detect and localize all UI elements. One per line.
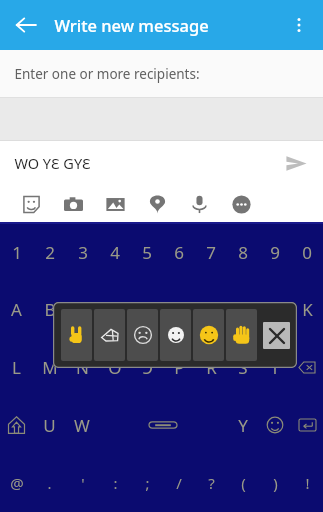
button[interactable]: U bbox=[33, 396, 66, 454]
staticText: ) bbox=[273, 473, 278, 493]
staticText: 3 bbox=[78, 241, 88, 264]
button[interactable]: 6 bbox=[163, 224, 195, 281]
button[interactable]: Sticker bbox=[10, 186, 52, 222]
staticText: ? bbox=[208, 473, 215, 493]
button[interactable]: 7 bbox=[195, 224, 227, 281]
staticText: L bbox=[12, 356, 21, 379]
staticText: Write new message bbox=[54, 14, 209, 36]
button[interactable]: A bbox=[0, 281, 33, 338]
button[interactable]: 4 bbox=[99, 224, 131, 281]
button[interactable]: M bbox=[33, 338, 66, 396]
button[interactable]: Enter bbox=[291, 396, 323, 454]
button[interactable]: Voice bbox=[178, 186, 220, 222]
button[interactable]: Ɔ bbox=[131, 338, 163, 396]
button[interactable]: WO YƐ GYƐ bbox=[0, 141, 323, 185]
button[interactable]: . bbox=[33, 454, 66, 512]
button[interactable]: ' bbox=[66, 454, 99, 512]
staticText: 5 bbox=[142, 241, 152, 264]
staticText: M bbox=[42, 356, 58, 379]
button[interactable]: ) bbox=[259, 454, 291, 512]
button[interactable]: Location bbox=[136, 186, 178, 222]
button[interactable]: 9 bbox=[259, 224, 291, 281]
staticText: Enter one or more recipients: bbox=[14, 65, 200, 83]
staticText: R bbox=[206, 356, 217, 379]
button[interactable]: ; bbox=[131, 454, 163, 512]
button[interactable]: S bbox=[227, 338, 259, 396]
button[interactable]: Emoji bbox=[259, 396, 291, 454]
button[interactable]: ? bbox=[195, 454, 227, 512]
button[interactable]: ! bbox=[291, 454, 323, 512]
button[interactable]: 3 bbox=[66, 224, 99, 281]
staticText: ; bbox=[145, 473, 150, 493]
button[interactable]: Enter one or more recipients: bbox=[0, 50, 323, 97]
button[interactable]: White smiling face bbox=[160, 309, 191, 361]
staticText: D bbox=[76, 298, 89, 321]
staticText: 0 bbox=[302, 241, 312, 264]
staticText: 4 bbox=[110, 241, 120, 264]
staticText: : bbox=[113, 473, 118, 493]
staticText: 9 bbox=[270, 241, 280, 264]
staticText: P bbox=[174, 356, 185, 379]
button[interactable]: L bbox=[0, 338, 33, 396]
button[interactable]: / bbox=[163, 454, 195, 512]
button[interactable]: ( bbox=[227, 454, 259, 512]
button[interactable]: R bbox=[195, 338, 227, 396]
button[interactable]: Camera bbox=[52, 186, 94, 222]
staticText: 7 bbox=[206, 241, 216, 264]
button[interactable]: Slingshot bbox=[94, 309, 125, 361]
button[interactable]: T bbox=[259, 338, 291, 396]
button[interactable]: G bbox=[195, 281, 227, 338]
button[interactable]: Close bbox=[263, 322, 290, 349]
button[interactable]: Backspace bbox=[291, 338, 323, 396]
button[interactable]: D bbox=[66, 281, 99, 338]
button[interactable]: Ɛ bbox=[131, 281, 163, 338]
button[interactable]: Shift bbox=[0, 396, 33, 454]
button[interactable]: Back bbox=[6, 5, 46, 45]
button[interactable]: : bbox=[99, 454, 131, 512]
staticText: B bbox=[44, 298, 56, 321]
button[interactable]: Victory hand bbox=[61, 309, 92, 361]
button[interactable]: F bbox=[163, 281, 195, 338]
button[interactable]: P bbox=[163, 338, 195, 396]
staticText: 6 bbox=[174, 241, 184, 264]
button[interactable]: Smiling face bbox=[193, 309, 224, 361]
button[interactable]: W bbox=[66, 396, 98, 454]
staticText: @ bbox=[10, 473, 24, 493]
button[interactable]: Gallery bbox=[94, 186, 136, 222]
staticText: U bbox=[43, 414, 56, 437]
button[interactable]: More bbox=[220, 186, 262, 222]
staticText: Ɛ bbox=[142, 298, 152, 321]
button[interactable]: K bbox=[291, 281, 323, 338]
button[interactable]: More options bbox=[279, 5, 319, 45]
staticText: Ɔ bbox=[142, 356, 153, 379]
button[interactable]: Space bbox=[98, 396, 227, 454]
button[interactable]: B bbox=[33, 281, 66, 338]
staticText: 2 bbox=[45, 241, 55, 264]
other: Backspace bbox=[299, 362, 315, 373]
staticText: T bbox=[270, 356, 280, 379]
button[interactable]: @ bbox=[0, 454, 33, 512]
button[interactable]: 8 bbox=[227, 224, 259, 281]
button[interactable]: Raised hand bbox=[226, 309, 257, 361]
staticText: E bbox=[110, 298, 120, 321]
button[interactable]: 1 bbox=[0, 224, 33, 281]
button[interactable]: 2 bbox=[33, 224, 66, 281]
staticText: 1 bbox=[12, 241, 22, 264]
button[interactable]: O bbox=[99, 338, 131, 396]
staticText: F bbox=[175, 298, 184, 321]
staticText: I bbox=[272, 298, 278, 321]
button[interactable]: Send bbox=[279, 146, 313, 180]
staticText: A bbox=[11, 298, 22, 321]
button[interactable]: 5 bbox=[131, 224, 163, 281]
button[interactable]: I bbox=[259, 281, 291, 338]
button[interactable]: E bbox=[99, 281, 131, 338]
button[interactable]: N bbox=[66, 338, 99, 396]
staticText: / bbox=[176, 473, 182, 493]
button[interactable]: Y bbox=[227, 396, 259, 454]
button[interactable]: H bbox=[227, 281, 259, 338]
staticText: 8 bbox=[238, 241, 248, 264]
staticText: . bbox=[47, 473, 52, 493]
button[interactable]: Frowning face bbox=[127, 309, 158, 361]
button[interactable]: 0 bbox=[291, 224, 323, 281]
staticText: WO YƐ GYƐ bbox=[14, 153, 91, 173]
